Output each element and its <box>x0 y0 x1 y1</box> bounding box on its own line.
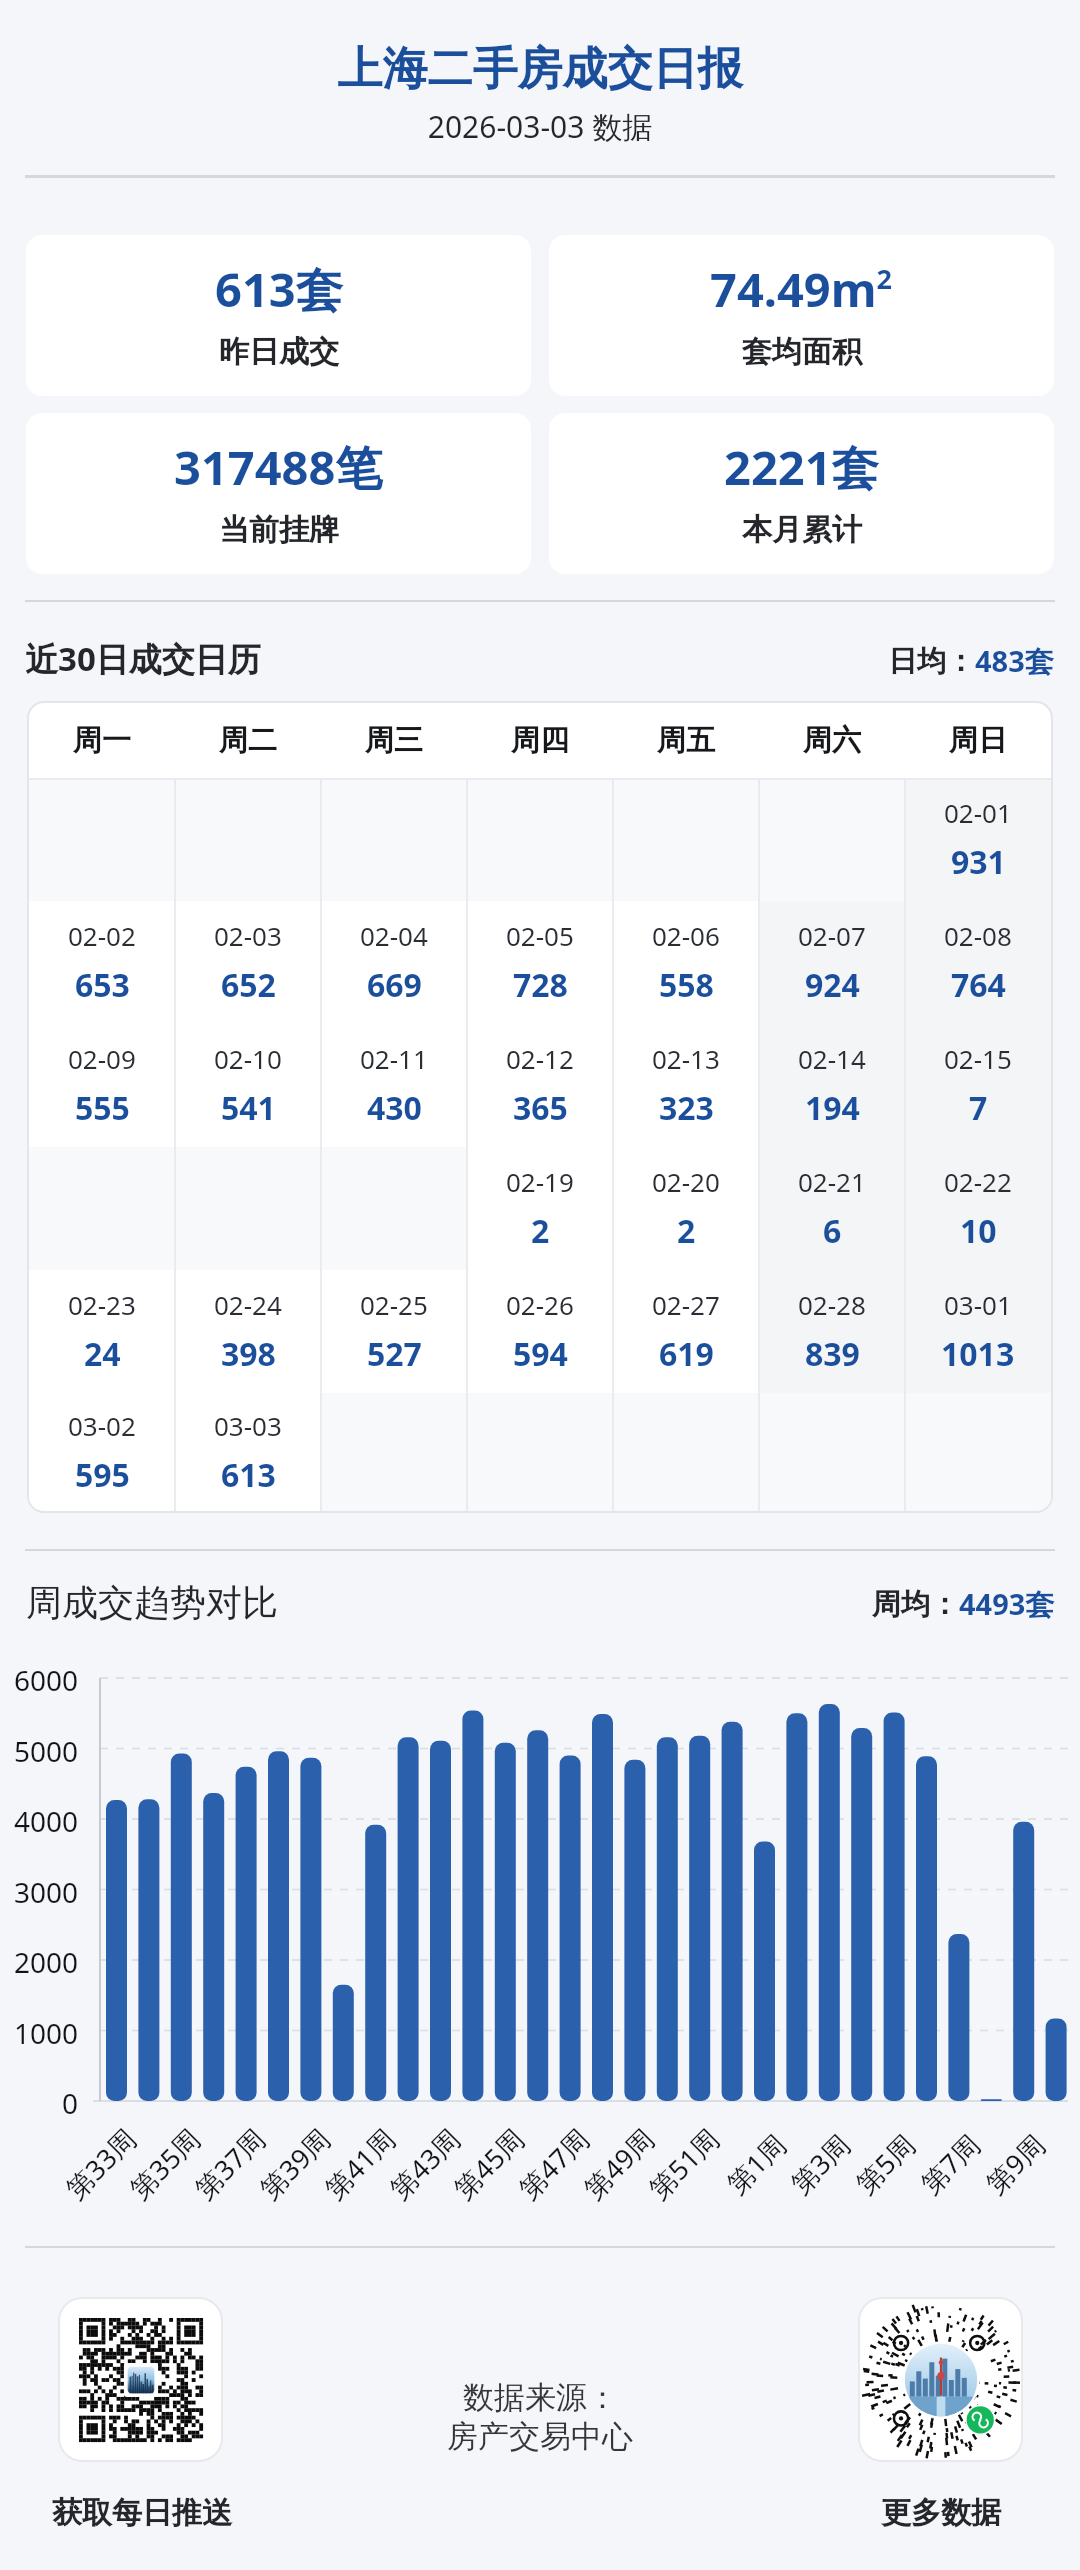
staticText: 4493套 <box>959 1584 1055 1624</box>
staticText: 594 <box>513 1332 568 1376</box>
staticText: 2000 <box>0 1943 78 1981</box>
staticText: 931 <box>951 840 1006 884</box>
button[interactable]: 02-19 <box>467 1147 613 1270</box>
staticText: 398 <box>221 1332 276 1376</box>
staticText: 2026-03-03 数据 <box>0 106 1080 147</box>
staticText: 02-10 <box>214 1041 282 1076</box>
staticText: 10 <box>960 1209 997 1253</box>
button[interactable]: 02-13 <box>613 1024 759 1147</box>
button[interactable]: 02-15 <box>905 1024 1051 1147</box>
button[interactable]: 更多数据小程序码 <box>860 2299 1021 2460</box>
staticText: 周五 <box>657 722 715 759</box>
staticText: 4000 <box>0 1802 78 1840</box>
staticText: 365 <box>513 1086 568 1130</box>
button[interactable]: 02-20 <box>613 1147 759 1270</box>
button[interactable]: 02-10 <box>175 1024 321 1147</box>
button[interactable]: 03-03 <box>175 1393 321 1511</box>
button[interactable]: 2221套 <box>549 413 1054 574</box>
staticText: 613套 <box>215 257 343 321</box>
staticText: 第41周 <box>316 2120 403 2207</box>
staticText: 周六 <box>803 722 861 759</box>
staticText: 1013 <box>941 1332 1015 1376</box>
staticText: 02-28 <box>798 1287 866 1322</box>
button[interactable]: 02-28 <box>759 1270 905 1393</box>
staticText: 03-02 <box>68 1408 136 1443</box>
button[interactable]: 02-05 <box>467 901 613 1024</box>
staticText: 02-21 <box>798 1164 866 1199</box>
button[interactable]: 317488笔 <box>26 413 531 574</box>
staticText: 02-26 <box>506 1287 574 1322</box>
staticText: 当前挂牌 <box>219 511 339 549</box>
staticText: 3000 <box>0 1873 78 1911</box>
button[interactable]: 74.49m2 <box>549 235 1054 396</box>
button[interactable]: 02-02 <box>29 901 175 1024</box>
button[interactable]: 02-12 <box>467 1024 613 1147</box>
button[interactable]: 获取每日推送二维码 <box>60 2299 221 2460</box>
button[interactable]: 获取每日推送 <box>46 2488 238 2538</box>
staticText: 02-11 <box>360 1041 428 1076</box>
staticText: 02-23 <box>68 1287 136 1322</box>
staticText: 613 <box>221 1453 276 1497</box>
staticText: 74.49m2 <box>710 257 893 321</box>
button[interactable]: 02-21 <box>759 1147 905 1270</box>
button[interactable]: 613套 <box>26 235 531 396</box>
staticText: 近30日成交日历 <box>25 636 261 681</box>
button[interactable]: 02-23 <box>29 1270 175 1393</box>
button[interactable]: 02-08 <box>905 901 1051 1024</box>
button[interactable]: 02-09 <box>29 1024 175 1147</box>
staticText: 第33周 <box>57 2120 144 2207</box>
button[interactable]: 02-07 <box>759 901 905 1024</box>
staticText: 周均： <box>872 1586 959 1623</box>
button[interactable]: 02-24 <box>175 1270 321 1393</box>
staticText: 02-02 <box>68 918 136 953</box>
staticText: 02-27 <box>652 1287 720 1322</box>
staticText: 430 <box>367 1086 422 1130</box>
button[interactable]: 02-01 <box>905 778 1051 901</box>
staticText: 第9周 <box>977 2126 1053 2201</box>
staticText: 669 <box>367 963 422 1007</box>
staticText: 653 <box>75 963 130 1007</box>
button[interactable]: 03-02 <box>29 1393 175 1511</box>
staticText: 第47周 <box>510 2120 597 2207</box>
staticText: 595 <box>75 1453 130 1497</box>
staticText: 02-06 <box>652 918 720 953</box>
staticText: 第5周 <box>847 2126 923 2201</box>
staticText: 第7周 <box>912 2126 988 2201</box>
staticText: 0 <box>0 2084 78 2122</box>
staticText: 483套 <box>975 641 1054 681</box>
button[interactable]: 02-03 <box>175 901 321 1024</box>
button[interactable]: 02-06 <box>613 901 759 1024</box>
staticText: 02-05 <box>506 918 574 953</box>
button[interactable]: 02-22 <box>905 1147 1051 1270</box>
staticText: 24 <box>84 1332 121 1376</box>
button[interactable]: 03-01 <box>905 1270 1051 1393</box>
staticText: 194 <box>805 1086 860 1130</box>
button[interactable]: 更多数据 <box>875 2488 1007 2538</box>
staticText: 02-15 <box>944 1041 1012 1076</box>
button[interactable]: 02-27 <box>613 1270 759 1393</box>
button[interactable]: 02-11 <box>321 1024 467 1147</box>
button[interactable]: 02-04 <box>321 901 467 1024</box>
button[interactable]: 02-26 <box>467 1270 613 1393</box>
staticText: 日均： <box>888 643 975 680</box>
staticText: 房产交易中心 <box>447 2417 633 2456</box>
button[interactable]: 02-14 <box>759 1024 905 1147</box>
staticText: 第39周 <box>251 2120 338 2207</box>
staticText: 周一 <box>73 722 131 759</box>
staticText: 周四 <box>511 722 569 759</box>
button[interactable]: 02-25 <box>321 1270 467 1393</box>
